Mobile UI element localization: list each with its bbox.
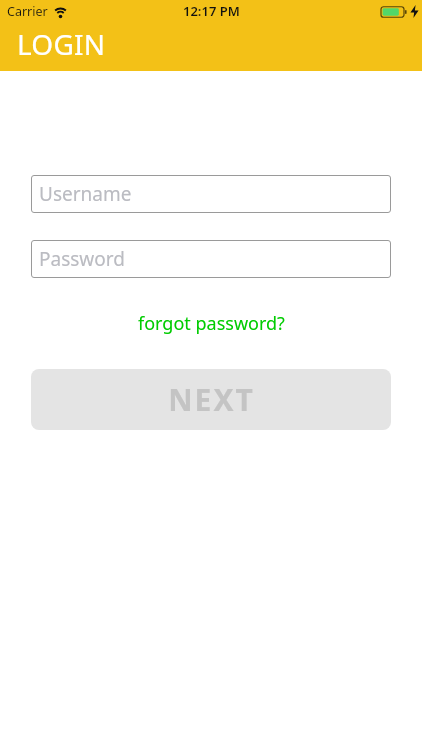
staticText: Carrier xyxy=(7,3,48,20)
button[interactable]: forgot password? xyxy=(138,311,285,336)
button[interactable]: NEXT xyxy=(31,369,391,430)
staticText: 12:17 PM xyxy=(183,2,240,20)
staticText: Username xyxy=(39,181,132,207)
staticText: Password xyxy=(39,246,125,272)
staticText: NEXT xyxy=(168,379,255,420)
staticText: LOGIN xyxy=(17,25,106,63)
button[interactable]: Password xyxy=(31,240,391,278)
button[interactable]: Username xyxy=(31,175,391,213)
